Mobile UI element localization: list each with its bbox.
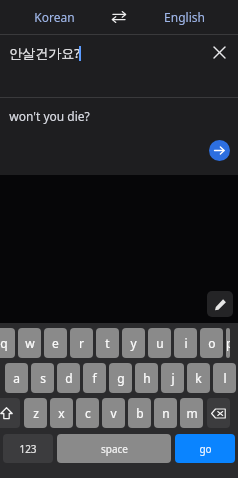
button[interactable]: p: [226, 328, 230, 358]
staticText: l: [223, 370, 227, 386]
staticText: v: [110, 405, 117, 421]
button[interactable]: Handwriting input: [207, 291, 233, 317]
button[interactable]: o: [200, 328, 223, 358]
staticText: space: [101, 442, 128, 456]
button[interactable]: u: [148, 328, 171, 358]
staticText: English: [164, 9, 205, 25]
button[interactable]: 123: [3, 434, 53, 463]
button[interactable]: x: [50, 398, 73, 428]
staticText: Korean: [34, 9, 75, 25]
button[interactable]: v: [102, 398, 125, 428]
button[interactable]: j: [161, 363, 184, 393]
button[interactable]: Swap languages: [102, 0, 136, 34]
staticText: f: [92, 370, 97, 386]
button[interactable]: Backspace: [207, 398, 230, 428]
button[interactable]: r: [70, 328, 93, 358]
button[interactable]: c: [76, 398, 99, 428]
button[interactable]: z: [24, 398, 47, 428]
button[interactable]: English: [136, 0, 232, 34]
button[interactable]: n: [154, 398, 177, 428]
staticText: u: [156, 335, 164, 351]
staticText: q: [0, 335, 8, 351]
staticText: p: [226, 335, 230, 351]
button[interactable]: y: [122, 328, 145, 358]
button[interactable]: e: [44, 328, 67, 358]
staticText: x: [58, 405, 65, 421]
button[interactable]: i: [174, 328, 197, 358]
button[interactable]: q: [0, 328, 15, 358]
staticText: a: [13, 370, 20, 386]
button[interactable]: g: [109, 363, 132, 393]
button[interactable]: k: [187, 363, 210, 393]
button[interactable]: t: [96, 328, 119, 358]
staticText: d: [65, 370, 73, 386]
staticText: c: [85, 405, 91, 421]
staticText: k: [195, 370, 202, 386]
staticText: 123: [19, 442, 37, 456]
staticText: o: [208, 335, 216, 351]
staticText: m: [186, 405, 198, 421]
button[interactable]: a: [5, 363, 28, 393]
staticText: n: [162, 405, 170, 421]
staticText: e: [52, 335, 59, 351]
staticText: s: [40, 370, 46, 386]
staticText: b: [136, 405, 144, 421]
button[interactable]: f: [83, 363, 106, 393]
button[interactable]: Clear text: [206, 39, 232, 65]
staticText: t: [105, 335, 110, 351]
button[interactable]: h: [135, 363, 158, 393]
staticText: i: [184, 335, 188, 351]
button[interactable]: d: [57, 363, 80, 393]
button[interactable]: w: [18, 328, 41, 358]
staticText: z: [33, 405, 39, 421]
button[interactable]: s: [31, 363, 54, 393]
button[interactable]: b: [128, 398, 151, 428]
button[interactable]: Submit translation: [209, 140, 230, 161]
staticText: j: [171, 370, 175, 386]
button[interactable]: m: [180, 398, 203, 428]
staticText: won't you die?: [9, 108, 90, 124]
staticText: h: [143, 370, 151, 386]
button[interactable]: Korean: [6, 0, 102, 34]
staticText: y: [130, 335, 137, 351]
button[interactable]: go: [175, 434, 235, 463]
staticText: r: [79, 335, 84, 351]
staticText: go: [199, 442, 212, 456]
staticText: w: [25, 335, 35, 351]
button[interactable]: l: [213, 363, 236, 393]
button[interactable]: space: [57, 434, 171, 463]
staticText: g: [117, 370, 125, 386]
staticText: 안살건가요?: [9, 44, 80, 62]
button[interactable]: Shift: [0, 398, 20, 428]
